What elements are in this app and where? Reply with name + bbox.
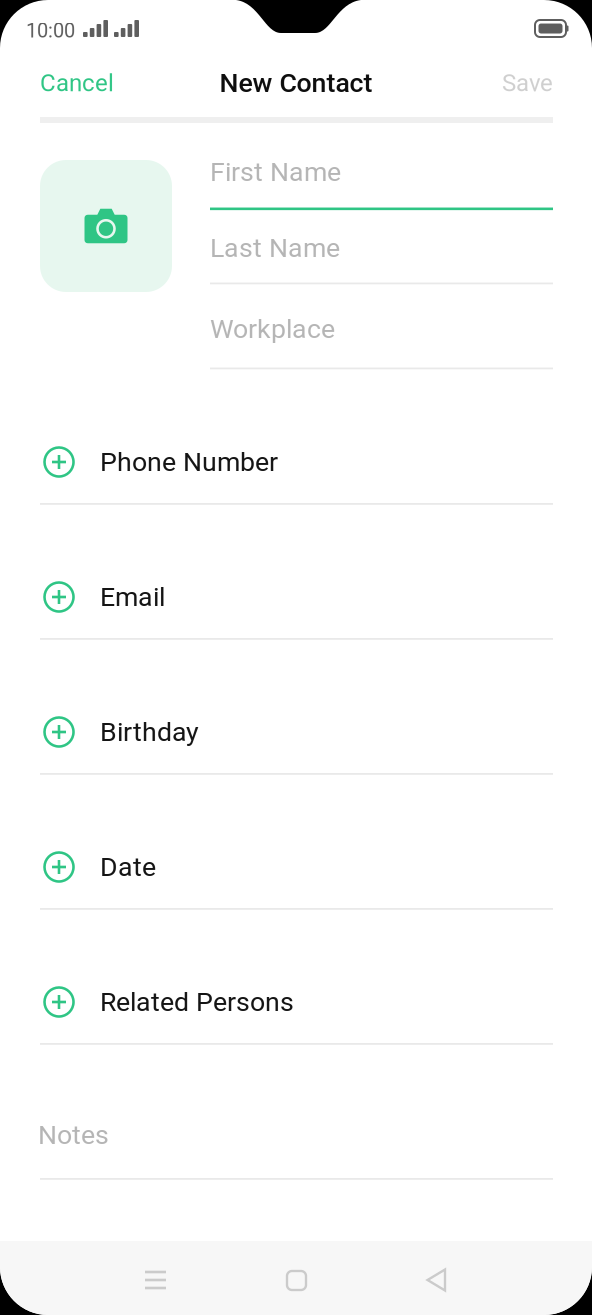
button[interactable]: Add contact photo	[40, 160, 172, 292]
button[interactable]: Related Persons	[40, 950, 553, 1046]
staticText: 10:00	[26, 19, 75, 42]
button[interactable]: Last Name	[210, 233, 553, 285]
staticText: Last Name	[210, 232, 340, 264]
button[interactable]: First Name	[210, 157, 553, 210]
staticText: Birthday	[100, 716, 199, 748]
staticText: Related Persons	[100, 986, 294, 1018]
button[interactable]: Date	[40, 815, 553, 911]
staticText: Save	[502, 69, 553, 97]
staticText: New Contact	[219, 67, 372, 99]
button[interactable]: Home	[265, 1249, 328, 1312]
staticText: Email	[100, 581, 165, 613]
button[interactable]: Birthday	[40, 680, 553, 776]
staticText: Notes	[38, 1119, 109, 1151]
staticText: Phone Number	[100, 446, 278, 478]
button[interactable]: Email	[40, 545, 553, 641]
button[interactable]: Phone Number	[40, 410, 553, 506]
button[interactable]: Workplace	[210, 314, 553, 370]
staticText: Date	[100, 851, 156, 883]
staticText: Workplace	[210, 313, 335, 345]
button[interactable]: Cancel	[40, 57, 136, 109]
button[interactable]: Save	[493, 57, 553, 109]
staticText: First Name	[210, 156, 341, 188]
staticText: Cancel	[40, 69, 114, 97]
button[interactable]: Back	[405, 1247, 468, 1313]
button[interactable]: Notes	[40, 1085, 553, 1181]
button[interactable]: Recent apps	[123, 1249, 188, 1311]
